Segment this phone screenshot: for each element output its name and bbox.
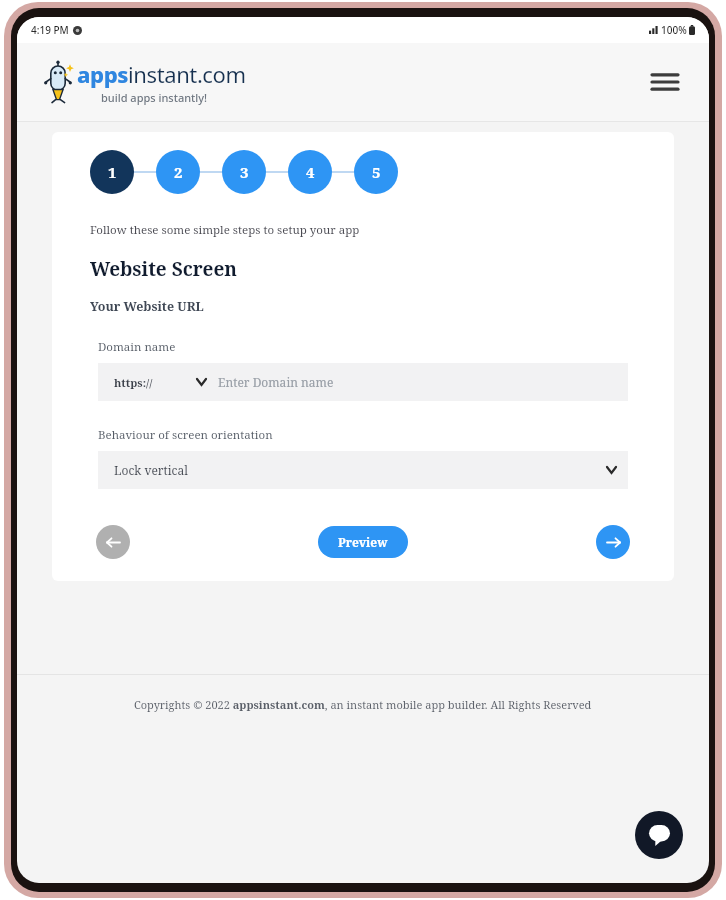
- button[interactable]: Next step: [596, 525, 630, 559]
- staticText: build apps instantly!: [101, 90, 208, 105]
- staticText: 100%: [661, 23, 687, 37]
- button[interactable]: 3: [222, 150, 266, 194]
- staticText: Your Website URL: [90, 298, 204, 315]
- staticText: 3: [240, 162, 249, 182]
- staticText: 5: [372, 162, 381, 182]
- button[interactable]: Preview: [318, 526, 408, 558]
- staticText: Domain name: [98, 339, 176, 355]
- button[interactable]: 2: [156, 150, 200, 194]
- staticText: 1: [108, 162, 117, 182]
- staticText: Enter Domain name: [218, 374, 334, 390]
- staticText: appsinstant.com: [77, 59, 246, 89]
- button[interactable]: Lock vertical: [98, 451, 628, 489]
- button[interactable]: 1: [90, 150, 134, 194]
- button[interactable]: https://: [98, 363, 628, 401]
- staticText: Behaviour of screen orientation: [98, 427, 273, 443]
- staticText: 2: [174, 162, 183, 182]
- button[interactable]: 5: [354, 150, 398, 194]
- staticText: Lock vertical: [114, 462, 188, 478]
- staticText: Website Screen: [90, 256, 238, 282]
- button[interactable]: Open menu: [643, 60, 687, 104]
- button[interactable]: Previous step: [96, 525, 130, 559]
- button[interactable]: 4: [288, 150, 332, 194]
- staticText: https://: [114, 375, 153, 390]
- staticText: 4:19 PM: [31, 23, 69, 37]
- staticText: Follow these some simple steps to setup …: [90, 222, 360, 238]
- staticText: Preview: [338, 534, 388, 550]
- staticText: Copyrights © 2022 appsinstant.com, an in…: [134, 697, 592, 712]
- staticText: 4: [306, 162, 315, 182]
- button[interactable]: Open chat: [635, 811, 683, 859]
